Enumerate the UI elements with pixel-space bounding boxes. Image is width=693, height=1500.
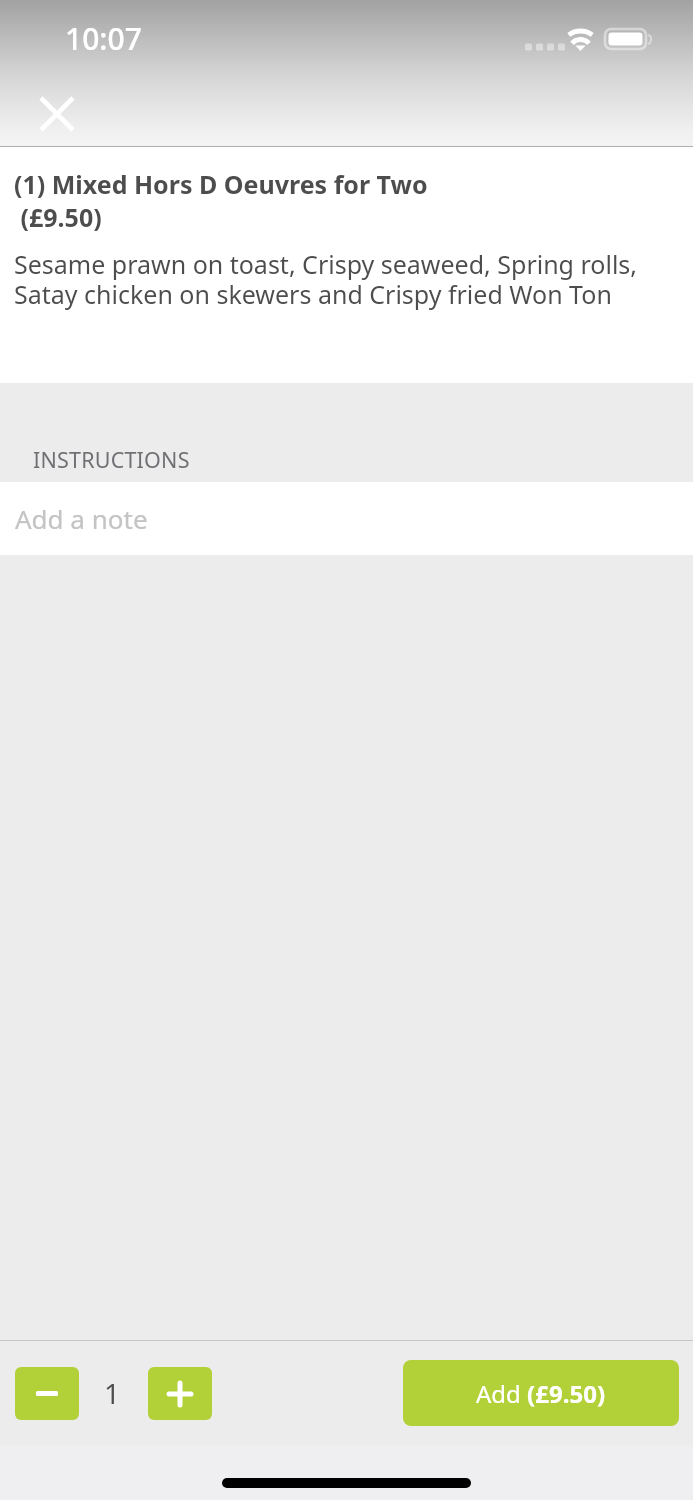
button[interactable]: Increase quantity [148, 1367, 212, 1420]
button[interactable]: Add (£9.50) [403, 1360, 679, 1426]
staticText: Add a note [15, 501, 148, 536]
staticText: 1 [104, 1374, 121, 1412]
staticText: INSTRUCTIONS [33, 445, 190, 474]
staticText: (1) Mixed Hors D Oeuvres for Two (£9.50) [14, 167, 428, 234]
button[interactable]: Decrease quantity [15, 1367, 79, 1420]
button[interactable]: Close [24, 81, 89, 146]
staticText: Add (£9.50) [476, 1377, 606, 1410]
staticText: 10:07 [65, 18, 142, 59]
staticText: Sesame prawn on toast, Crispy seaweed, S… [14, 247, 683, 312]
button[interactable]: Add a note [0, 482, 693, 555]
